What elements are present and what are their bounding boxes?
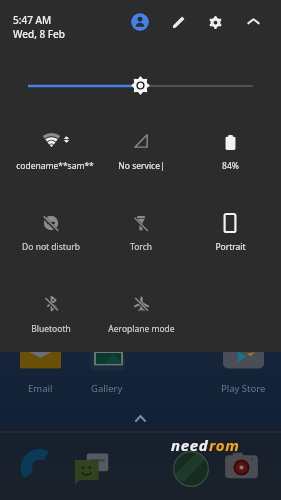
staticText: need [171, 435, 209, 455]
button[interactable]: Edit [171, 15, 186, 30]
button[interactable]: All apps [131, 409, 150, 428]
staticText: rom [209, 435, 240, 455]
button[interactable]: Play Store [209, 345, 277, 395]
button[interactable]: Phone [21, 449, 58, 486]
button[interactable]: Do not disturb [8, 199, 94, 258]
button[interactable]: Bluetooth [8, 279, 94, 340]
button[interactable]: Collapse [247, 15, 260, 28]
staticText: 84% [222, 160, 239, 172]
button[interactable]: Gallery [73, 345, 141, 395]
button[interactable]: codename**sam** [8, 116, 94, 176]
button[interactable]: Aeroplane mode [98, 279, 184, 340]
button[interactable]: Camera [221, 447, 262, 488]
button[interactable]: Portrait [187, 199, 273, 258]
button[interactable]: Email [6, 345, 74, 395]
staticText: Gallery [91, 382, 123, 395]
staticText: Wed, 8 Feb [13, 27, 66, 41]
button[interactable]: Browser [172, 450, 210, 488]
staticText: Portrait [215, 241, 246, 253]
button[interactable]: Account [131, 13, 149, 31]
staticText: Bluetooth [31, 323, 71, 335]
button[interactable]: 84% [187, 118, 273, 177]
button[interactable]: 5:47 AM [13, 13, 66, 41]
staticText: Aeroplane mode [108, 323, 175, 335]
staticText: Do not disturb [22, 241, 80, 253]
button[interactable] [0, 82, 281, 90]
button[interactable]: No service| [98, 117, 184, 177]
button[interactable]: Messages [72, 449, 109, 486]
staticText: Play Store [221, 382, 266, 395]
button[interactable]: Torch [98, 199, 184, 258]
staticText: 5:47 AM [13, 13, 52, 27]
staticText: codename**sam** [16, 160, 94, 172]
button[interactable]: Settings [208, 15, 223, 30]
staticText: Torch [130, 241, 152, 253]
staticText: Email [28, 382, 53, 395]
button[interactable]: Brightness [131, 76, 150, 95]
staticText: No service| [118, 160, 165, 172]
